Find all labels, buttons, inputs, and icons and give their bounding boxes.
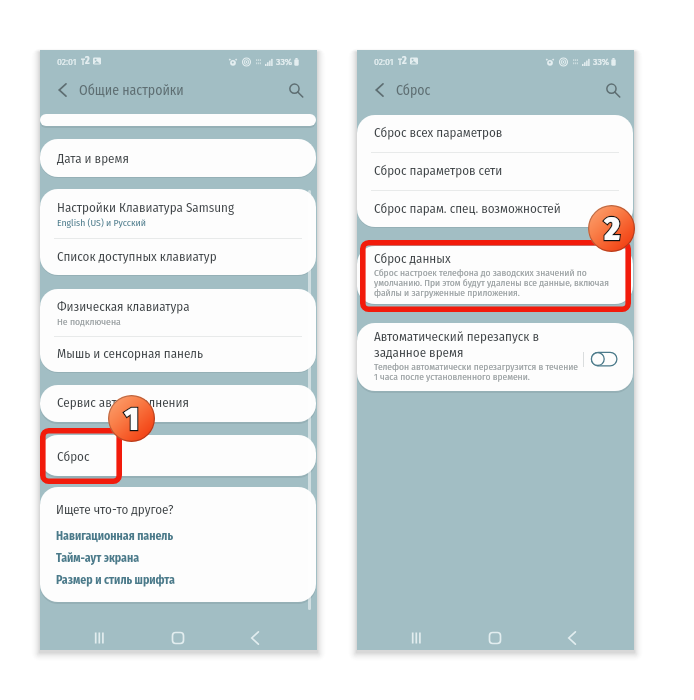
staticText: 33% (593, 56, 610, 67)
staticText: English (US) и Русский (57, 217, 146, 229)
button[interactable]: Назад (366, 77, 392, 103)
button[interactable]: Мышь и сенсорная панель (40, 336, 316, 372)
staticText: 2 (402, 55, 407, 67)
staticText: Телефон автоматически перезагрузится в т… (374, 361, 580, 382)
button[interactable]: Поиск (281, 76, 309, 104)
staticText: Мышь и сенсорная панель (57, 346, 204, 362)
button[interactable]: Размер и стиль шрифта (40, 571, 316, 592)
staticText: Сброс данных (374, 251, 451, 267)
staticText: Размер и стиль шрифта (56, 573, 175, 587)
staticText: Сброс парам. спец. возможностей (374, 201, 561, 217)
button[interactable]: Навигационная панель (40, 527, 316, 548)
staticText: Сброс настроек телефона до заводских зна… (374, 267, 610, 298)
staticText: Тайм-аут экрана (56, 551, 140, 565)
button[interactable]: Сброс данных (357, 246, 633, 304)
button[interactable]: Дата и время (40, 139, 316, 177)
staticText: 2 (85, 55, 90, 67)
staticText: Не подключена (57, 316, 121, 328)
staticText: Настройки Клавиатура Samsung (57, 200, 235, 216)
staticText: 2 (604, 209, 620, 249)
staticText: Общие настройки (79, 82, 184, 99)
staticText: Сброс (57, 449, 90, 465)
button[interactable]: Переключатель автоматического перезапуск… (586, 345, 622, 373)
staticText: Список доступных клавиатур (57, 249, 217, 265)
staticText: Сброс параметров сети (374, 163, 503, 179)
staticText: Навигационная панель (56, 529, 174, 543)
button[interactable]: Сброс параметров сети (357, 153, 633, 191)
staticText: 02:01 (57, 56, 77, 67)
button[interactable]: Сброс всех параметров (357, 115, 633, 153)
staticText: Сброс (396, 82, 431, 99)
button[interactable]: Автоматический перезапуск в заданное вре… (357, 323, 633, 391)
staticText: 1 (124, 399, 139, 439)
staticText: Автоматический перезапуск в заданное вре… (374, 329, 554, 361)
staticText: 33% (276, 56, 293, 67)
button[interactable]: Поиск (598, 76, 626, 104)
button[interactable]: Сброс парам. спец. возможностей (357, 191, 633, 227)
staticText: 2 (604, 209, 620, 249)
button[interactable]: Список доступных клавиатур (40, 238, 316, 274)
staticText: 02:01 (374, 56, 394, 67)
button[interactable]: Физическая клавиатура (40, 289, 316, 336)
staticText: Физическая клавиатура (57, 299, 190, 315)
staticText: Дата и время (57, 151, 129, 167)
button[interactable]: Сервис автозаполнения (40, 385, 316, 422)
button[interactable]: Сброс (40, 435, 316, 476)
staticText: Ищете что-то другое? (56, 502, 174, 518)
button[interactable]: Настройки Клавиатура Samsung (40, 189, 316, 238)
button[interactable]: Назад (49, 77, 75, 103)
staticText: Сброс всех параметров (374, 125, 503, 141)
staticText: 1 (124, 399, 139, 439)
staticText: Сервис автозаполнения (57, 395, 189, 411)
button[interactable]: Тайм-аут экрана (40, 549, 316, 570)
